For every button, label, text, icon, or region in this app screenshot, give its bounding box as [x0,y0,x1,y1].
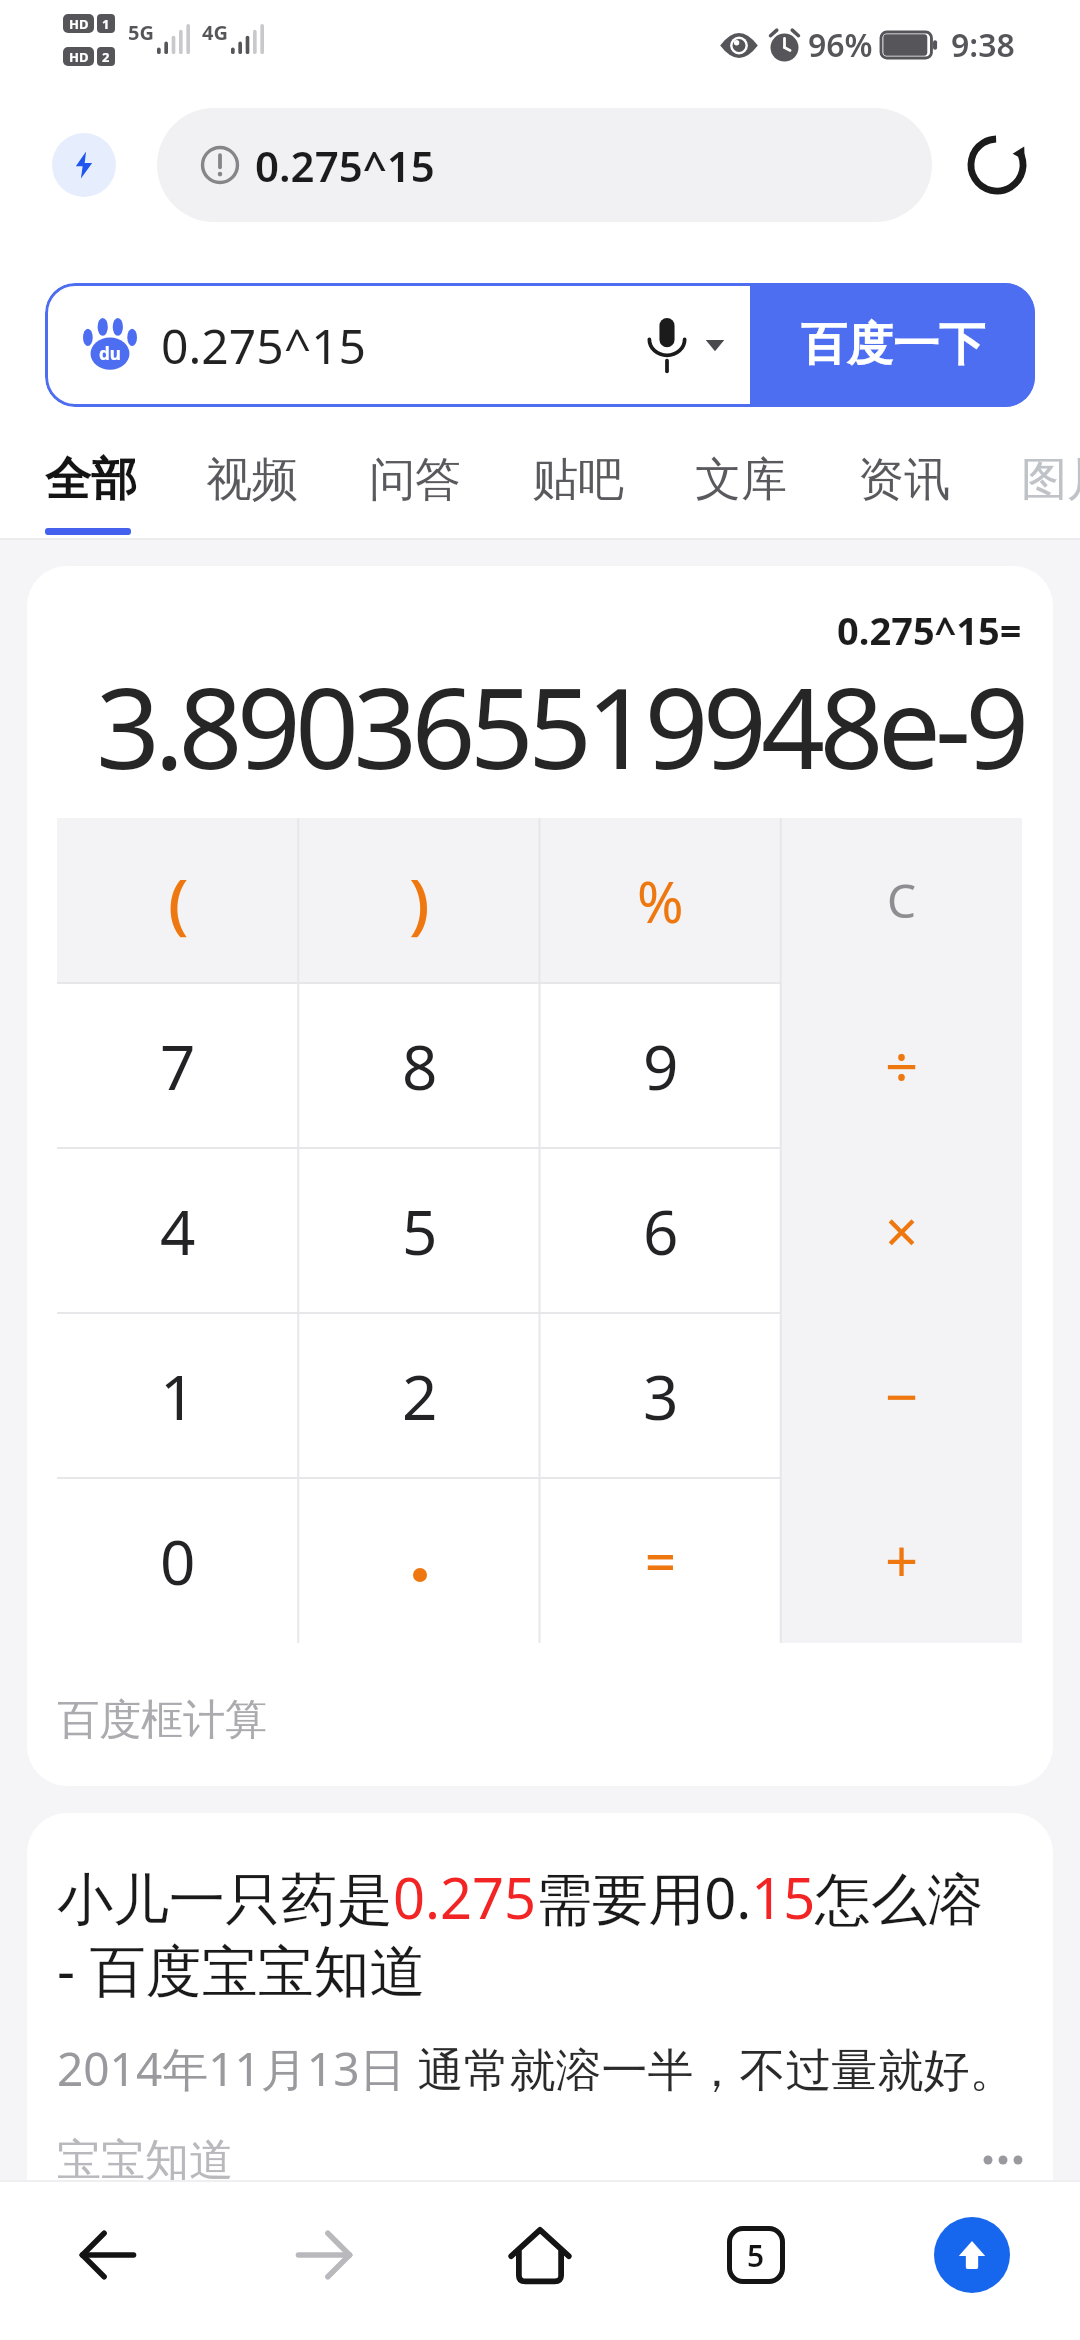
staticText: 4 [160,1189,196,1273]
button[interactable]: × [781,1148,1022,1313]
staticText: ) [409,856,430,946]
button[interactable]: 8 [299,983,540,1148]
button[interactable]: 0.275^15 [157,108,932,222]
staticText: ÷ [885,1026,919,1105]
staticText: 3 [643,1354,679,1438]
staticText: 小儿一只药是0.275需要用0.15怎么溶 [57,1859,984,1931]
button[interactable] [432,2182,648,2340]
staticText: − [885,1356,919,1435]
staticText: 2014年11月13日 通常就溶一半，不过量就好。 [57,2037,1016,2093]
staticText: 4G [202,19,228,46]
staticText: 宝宝知道 [57,2133,233,2187]
staticText: 1 [102,15,110,33]
button[interactable]: du [45,283,750,407]
staticText: = [645,1524,676,1598]
staticText: + [885,1521,919,1600]
staticText: 6 [643,1189,679,1273]
staticText: 百度一下 [801,316,985,374]
button[interactable]: 1 [57,1313,299,1478]
staticText: 7 [160,1024,196,1108]
button[interactable]: 视频 [206,451,298,509]
button[interactable]: 0 [57,1478,299,1643]
button[interactable]: % [540,818,781,983]
button[interactable]: 百度一下 [750,283,1035,407]
button[interactable]: 全部 [45,451,137,509]
button[interactable]: 7 [57,983,299,1148]
staticText: 8 [402,1024,438,1108]
staticText: 2 [102,48,110,66]
staticText: HD [69,15,89,33]
button[interactable]: 3 [540,1313,781,1478]
staticText: × [885,1191,919,1270]
staticText: 3.890365519948e-9 [96,649,1024,801]
button[interactable]: + [781,1478,1022,1643]
staticText: % [637,863,684,939]
button[interactable]: ÷ [781,983,1022,1148]
staticText: 5 [747,2235,765,2276]
staticText: HD [69,48,89,66]
button[interactable]: 问答 [369,451,461,509]
button[interactable]: ( [57,818,299,983]
staticText: 百度框计算 [57,1694,267,1747]
staticText: C [887,869,917,932]
button[interactable]: 5 [299,1148,540,1313]
staticText: 1 [160,1354,196,1438]
button[interactable]: 6 [540,1148,781,1313]
staticText: ( [168,856,189,946]
button[interactable] [0,2182,216,2340]
staticText: 5G [128,19,154,46]
button[interactable]: − [781,1313,1022,1478]
button[interactable]: 小儿一只药是0.275需要用0.15怎么溶 [27,1813,1053,2340]
staticText: 0.275^15 [255,137,435,194]
button[interactable]: 9 [540,983,781,1148]
staticText: du [99,342,121,365]
staticText: 2 [402,1354,438,1438]
button[interactable]: ) [299,818,540,983]
staticText: - 百度宝宝知道 [57,1931,426,2003]
staticText: 9:38 [951,23,1015,67]
button[interactable]: 贴吧 [532,451,624,509]
button[interactable]: 2 [299,1313,540,1478]
button[interactable]: 4 [57,1148,299,1313]
staticText: 9 [643,1024,679,1108]
button[interactable]: 5 [648,2182,864,2340]
staticText: 0.275^15= [837,604,1022,656]
button[interactable]: 文库 [695,451,787,509]
button[interactable] [299,1478,540,1643]
button[interactable]: 图片 [1021,451,1080,509]
button[interactable] [864,2182,1080,2340]
staticText: 96% [808,23,873,67]
button[interactable] [966,134,1028,196]
button[interactable]: = [540,1478,781,1643]
button[interactable] [216,2182,432,2340]
button[interactable]: 资讯 [858,451,950,509]
staticText: 0 [160,1519,196,1603]
staticText: 5 [402,1189,438,1273]
button[interactable] [52,133,116,197]
button[interactable]: C [781,818,1022,983]
staticText: 0.275^15 [161,313,367,378]
